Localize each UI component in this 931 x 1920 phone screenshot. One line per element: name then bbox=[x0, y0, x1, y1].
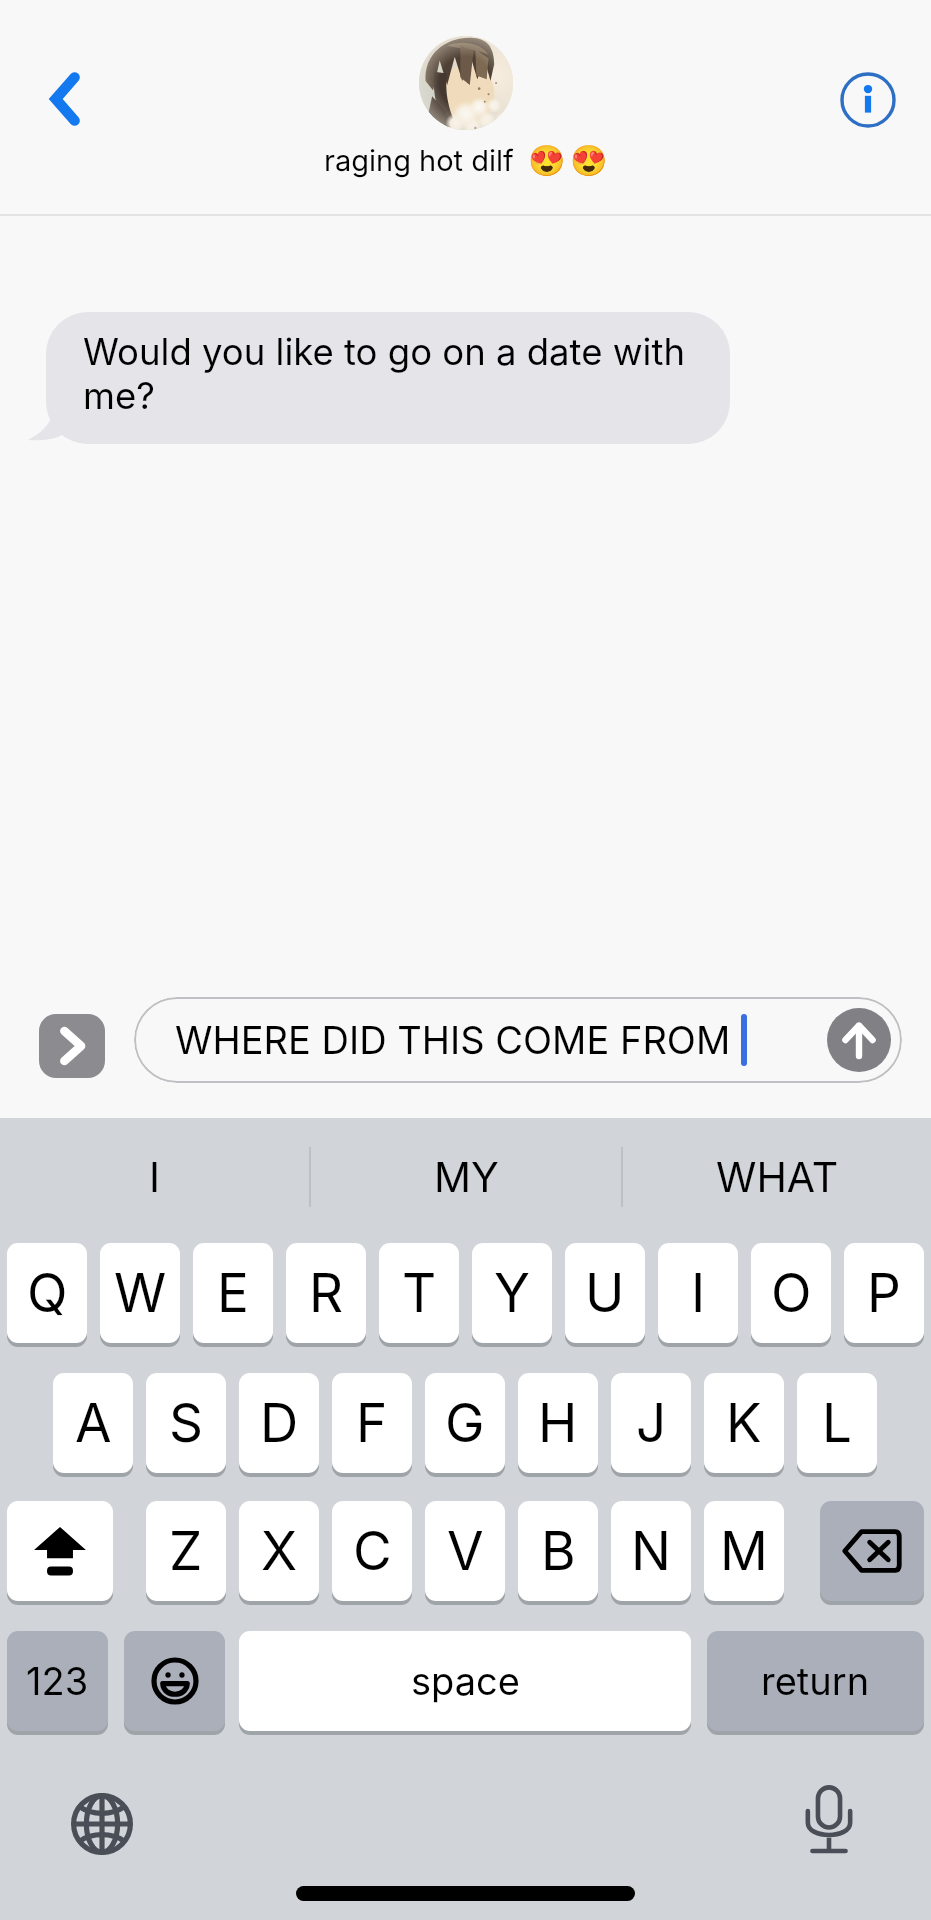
staticText: 😍 bbox=[570, 143, 608, 178]
button[interactable]: Send bbox=[827, 1008, 891, 1072]
staticText: return bbox=[761, 1658, 870, 1704]
button[interactable]: L bbox=[797, 1373, 877, 1473]
button[interactable]: M bbox=[704, 1501, 784, 1601]
button[interactable]: Y bbox=[472, 1243, 552, 1343]
staticText: D bbox=[260, 1391, 299, 1455]
staticText: T bbox=[402, 1261, 437, 1325]
button[interactable]: 123 bbox=[7, 1631, 108, 1731]
button[interactable]: Z bbox=[146, 1501, 226, 1601]
staticText: Would you like to go on a date with me? bbox=[83, 330, 706, 418]
button[interactable]: I bbox=[658, 1243, 738, 1343]
button[interactable]: V bbox=[425, 1501, 505, 1601]
staticText: K bbox=[726, 1391, 762, 1455]
button[interactable]: Would you like to go on a date with me? bbox=[46, 312, 730, 444]
button[interactable]: F bbox=[332, 1373, 412, 1473]
staticText: WHERE DID THIS COME FROM bbox=[175, 1017, 731, 1063]
button[interactable]: G bbox=[425, 1373, 505, 1473]
button[interactable]: D bbox=[239, 1373, 319, 1473]
button[interactable]: space bbox=[239, 1631, 691, 1731]
button[interactable]: return bbox=[707, 1631, 924, 1731]
staticText: 123 bbox=[26, 1658, 89, 1704]
staticText: I bbox=[149, 1152, 161, 1202]
button[interactable]: Change keyboard bbox=[57, 1779, 147, 1869]
button[interactable]: MY bbox=[311, 1118, 621, 1236]
staticText: W bbox=[114, 1261, 167, 1325]
button[interactable]: Dictate bbox=[784, 1775, 874, 1865]
button[interactable]: H bbox=[518, 1373, 598, 1473]
button[interactable]: Shift bbox=[7, 1501, 113, 1601]
staticText: B bbox=[541, 1519, 576, 1583]
button[interactable]: S bbox=[146, 1373, 226, 1473]
button[interactable]: I bbox=[0, 1118, 309, 1236]
button[interactable]: O bbox=[751, 1243, 831, 1343]
staticText: E bbox=[217, 1261, 249, 1325]
staticText: G bbox=[445, 1391, 485, 1455]
staticText: N bbox=[631, 1519, 671, 1583]
staticText: S bbox=[169, 1391, 204, 1455]
button[interactable]: E bbox=[193, 1243, 273, 1343]
staticText: WHAT bbox=[716, 1152, 839, 1202]
staticText: R bbox=[309, 1261, 344, 1325]
staticText: U bbox=[585, 1261, 625, 1325]
staticText: O bbox=[771, 1261, 812, 1325]
staticText: H bbox=[538, 1391, 578, 1455]
staticText: J bbox=[636, 1391, 667, 1455]
button[interactable]: A bbox=[53, 1373, 133, 1473]
button[interactable]: C bbox=[332, 1501, 412, 1601]
button[interactable]: W bbox=[100, 1243, 180, 1343]
button[interactable]: Show app drawer bbox=[39, 1014, 105, 1078]
staticText: space bbox=[411, 1658, 520, 1704]
button[interactable]: N bbox=[611, 1501, 691, 1601]
button[interactable]: raging hot dilf bbox=[316, 36, 616, 178]
staticText: Y bbox=[494, 1261, 530, 1325]
staticText: A bbox=[75, 1391, 112, 1455]
button[interactable]: Details bbox=[825, 57, 911, 143]
staticText: MY bbox=[434, 1152, 499, 1202]
staticText: V bbox=[447, 1519, 484, 1583]
button[interactable]: Emoji keyboard bbox=[124, 1631, 225, 1731]
button[interactable]: Backspace bbox=[820, 1501, 924, 1601]
staticText: raging hot dilf bbox=[324, 143, 514, 178]
staticText: I bbox=[691, 1261, 706, 1325]
button[interactable]: K bbox=[704, 1373, 784, 1473]
staticText: Z bbox=[169, 1519, 203, 1583]
button[interactable]: B bbox=[518, 1501, 598, 1601]
button[interactable]: T bbox=[379, 1243, 459, 1343]
staticText: M bbox=[720, 1519, 768, 1583]
button[interactable]: WHERE DID THIS COME FROM bbox=[134, 997, 902, 1083]
staticText: P bbox=[867, 1261, 901, 1325]
staticText: Q bbox=[27, 1261, 68, 1325]
button[interactable]: WHAT bbox=[623, 1118, 931, 1236]
button[interactable]: Back bbox=[22, 56, 108, 142]
button[interactable]: P bbox=[844, 1243, 924, 1343]
button[interactable]: J bbox=[611, 1373, 691, 1473]
staticText: L bbox=[822, 1391, 852, 1455]
button[interactable]: Q bbox=[7, 1243, 87, 1343]
staticText: F bbox=[356, 1391, 388, 1455]
button[interactable]: R bbox=[286, 1243, 366, 1343]
button[interactable]: X bbox=[239, 1501, 319, 1601]
staticText: 😍 bbox=[528, 143, 566, 178]
staticText: C bbox=[353, 1519, 392, 1583]
staticText: X bbox=[261, 1519, 298, 1583]
button[interactable]: U bbox=[565, 1243, 645, 1343]
